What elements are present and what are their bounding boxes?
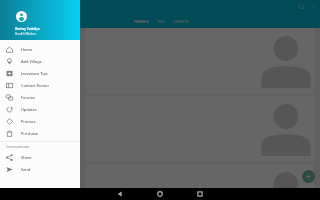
staticText: Add Village: [21, 59, 42, 64]
button[interactable]: Contact Doctor: [0, 79, 80, 91]
button[interactable]: UPDATES: [169, 19, 193, 24]
button[interactable]: Promos: [0, 115, 80, 127]
staticText: UPDATES: [173, 19, 189, 24]
button[interactable]: [86, 96, 314, 162]
staticText: Promos: [21, 119, 36, 124]
staticText: Purchase: [21, 131, 39, 136]
button[interactable]: PROFILE: [130, 19, 153, 24]
button[interactable]: Updates: [0, 103, 80, 115]
button[interactable]: [86, 28, 314, 94]
button[interactable]: Share: [0, 151, 80, 163]
button[interactable]: Home: [154, 188, 166, 200]
staticText: Akshay Vadoliya: [15, 27, 40, 31]
staticText: Updates: [21, 107, 37, 112]
button[interactable]: More options: [308, 2, 319, 13]
staticText: Forums: [21, 95, 36, 100]
staticText: Jeevanam Tips: [21, 71, 48, 76]
button[interactable]: Home: [0, 43, 80, 55]
staticText: Share: [21, 155, 32, 160]
staticText: TIPS: [157, 19, 165, 24]
button[interactable]: Add: [302, 170, 315, 183]
staticText: Communicate: [6, 144, 29, 149]
button[interactable]: Purchase: [0, 127, 80, 139]
button[interactable]: Forums: [0, 91, 80, 103]
button[interactable]: Back: [114, 188, 126, 200]
button[interactable]: Add Village: [0, 55, 80, 67]
staticText: Send: [21, 167, 31, 172]
button[interactable]: Jeevanam Tips: [0, 67, 80, 79]
button[interactable]: TIPS: [153, 19, 169, 24]
button[interactable]: Search: [296, 1, 308, 13]
staticText: PROFILE: [134, 19, 149, 24]
staticText: Contact Doctor: [21, 83, 50, 88]
staticText: Home: [21, 47, 33, 52]
button[interactable]: Send: [0, 163, 80, 175]
button[interactable]: Recent apps: [194, 188, 206, 200]
staticText: Health Worker: [15, 32, 37, 36]
button[interactable]: [86, 164, 314, 200]
